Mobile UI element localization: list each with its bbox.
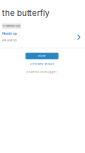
staticText: ON HIATUS — [2, 39, 17, 42]
staticText: Home — [38, 54, 46, 58]
button[interactable]: Next post — [78, 35, 80, 40]
button[interactable]: Home — [25, 53, 58, 59]
button[interactable]: View web version — [20, 61, 64, 66]
staticText: Heads up — [2, 31, 17, 35]
staticText: the butterfly — [2, 8, 49, 18]
staticText: Powered by Blogger. — [26, 70, 57, 74]
staticText: 21 NOVEMBER 2009 — [3, 25, 20, 27]
staticText: View web version — [29, 62, 54, 66]
button[interactable]: Heads up — [2, 31, 24, 36]
